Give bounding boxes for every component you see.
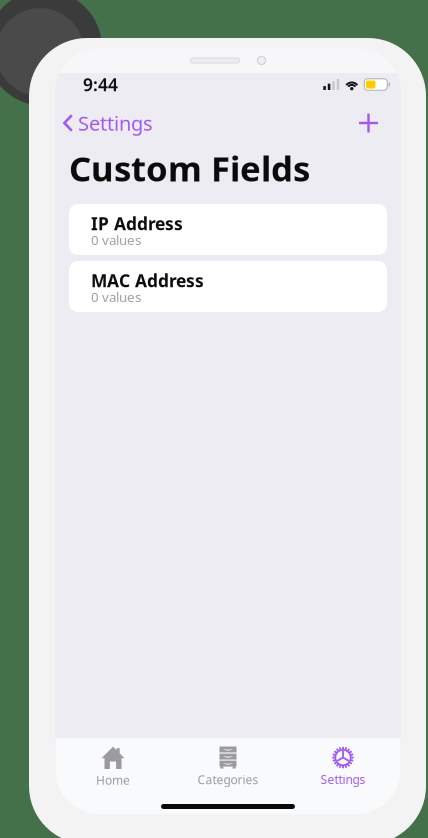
staticText: Categories [197,771,258,787]
staticText: 0 values [91,231,141,249]
button[interactable]: Home [55,745,170,789]
button[interactable]: Settings [285,745,400,789]
button[interactable]: MAC Address [69,261,387,312]
staticText: MAC Address [91,269,204,292]
staticText: 9:44 [83,73,118,96]
staticText: 0 values [91,288,141,306]
button[interactable]: Settings [63,105,153,141]
button[interactable]: Categories [170,745,285,789]
staticText: IP Address [91,212,183,235]
button[interactable]: IP Address [69,204,387,255]
button[interactable]: Add [353,107,384,138]
staticText: Settings [320,771,365,787]
staticText: Custom Fields [69,145,310,191]
staticText: Settings [78,110,153,136]
staticText: Home [96,772,130,788]
